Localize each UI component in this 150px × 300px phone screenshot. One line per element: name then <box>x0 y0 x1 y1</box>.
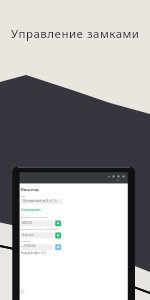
staticText: Постоянный на 4 ч / 1ч <box>23 199 57 203</box>
staticText: clck.ru/x <box>22 233 34 237</box>
staticText: Тип <box>21 194 26 197</box>
staticText: 845210 <box>22 221 33 225</box>
staticText: Управление замками <box>11 26 140 42</box>
staticText: Ссылка для доступа через веб <box>21 227 58 230</box>
staticText: Ваш код <box>21 187 39 193</box>
staticText: Телефон <box>21 239 32 242</box>
staticText: Кода действует 10 ч <box>21 251 47 255</box>
staticText: Сгенерировать <box>21 208 41 212</box>
staticText: +7 900 00 <box>22 244 36 248</box>
staticText: Сгенерированный код <box>21 215 49 218</box>
